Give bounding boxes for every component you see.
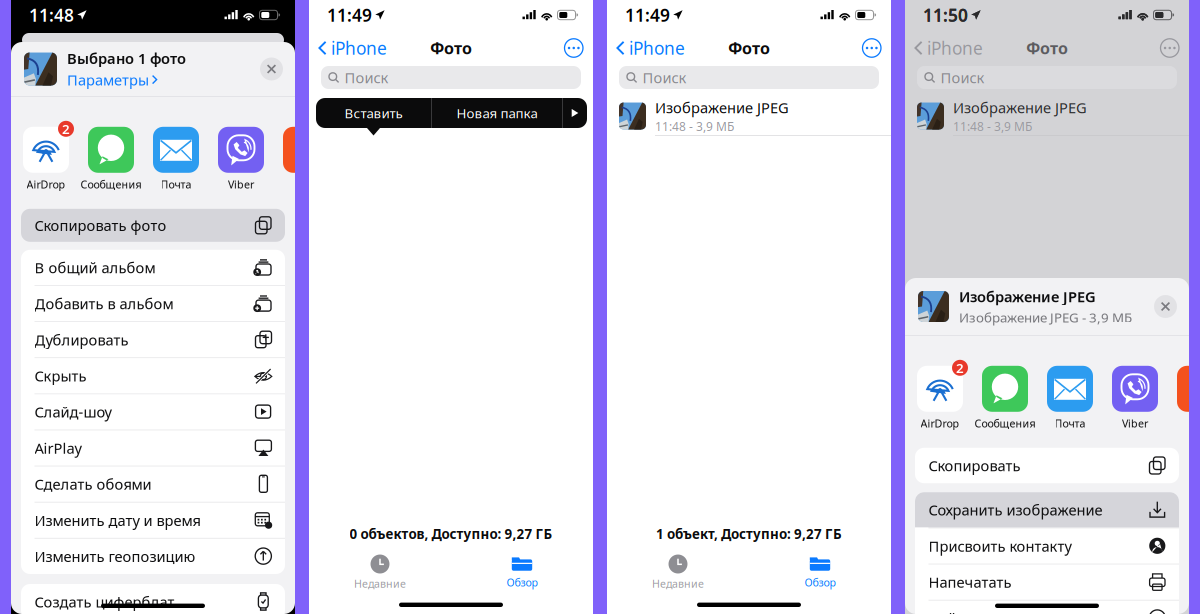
button[interactable]: iPhone (309, 30, 397, 66)
staticText: Viber (228, 177, 254, 191)
button[interactable]: 2 (917, 366, 963, 429)
staticText: Фото (430, 37, 472, 59)
button[interactable]: Почта (153, 127, 199, 190)
staticText: Почта (160, 177, 191, 191)
button[interactable]: Изображение JPEG (905, 97, 1189, 135)
button[interactable]: Изменить дату и время (21, 502, 285, 538)
button[interactable]: Добавить в альбом (21, 286, 285, 321)
button[interactable]: В общий альбом (21, 250, 285, 285)
staticText: iPhone (927, 36, 983, 59)
staticText: Параметры (67, 70, 149, 89)
button[interactable]: Ещё (554, 30, 593, 66)
staticText: iPhone (331, 36, 387, 59)
staticText: Поиск (940, 68, 984, 87)
button[interactable]: Скопировать фото (21, 209, 285, 242)
staticText: Недавние (354, 576, 406, 591)
button[interactable]: Почта (1047, 366, 1093, 429)
button[interactable]: Сообщения (88, 127, 134, 190)
button[interactable]: Сообщения (982, 366, 1028, 429)
staticText: Дублировать (34, 330, 128, 349)
button[interactable]: Viber (218, 127, 264, 190)
staticText: 11:48 (29, 3, 74, 26)
staticText: 11:50 (923, 3, 968, 26)
staticText: 11:49 (625, 3, 670, 26)
button[interactable]: Обзор (749, 557, 891, 589)
staticText: A (298, 135, 314, 165)
button[interactable]: Закрыть (260, 57, 283, 80)
button[interactable]: Viber (1112, 366, 1158, 429)
staticText: 2 (956, 359, 964, 377)
button[interactable]: Найти через Умную камеру (915, 600, 1179, 614)
button[interactable]: Закрыть (1154, 295, 1177, 318)
button[interactable]: Обзор (451, 557, 593, 589)
button[interactable]: 2 (23, 127, 69, 190)
button[interactable]: A (1177, 366, 1200, 429)
button[interactable]: iPhone (607, 30, 695, 66)
staticText: Сохранить изображение (928, 500, 1102, 520)
staticText: Поиск (642, 68, 686, 87)
button[interactable]: Поиск (917, 66, 1177, 89)
staticText: 11:48 - 3,9 МБ (655, 118, 734, 134)
staticText: AirPlay (34, 438, 81, 458)
staticText: 1 объект, Доступно: 9,27 ГБ (656, 525, 842, 543)
staticText: Поиск (344, 68, 388, 87)
staticText: 11:48 - 3,9 МБ (953, 118, 1032, 134)
staticText: Фото (1026, 37, 1068, 59)
button[interactable]: Поиск (619, 66, 879, 89)
staticText: Слайд-шоу (34, 402, 111, 422)
staticText: Изменить геопозицию (34, 547, 195, 566)
button[interactable]: AirPlay (21, 430, 285, 466)
button[interactable]: A (283, 127, 329, 190)
button[interactable]: iPhone (905, 30, 993, 66)
staticText: В общий альбом (34, 258, 155, 277)
staticText: Скопировать фото (34, 216, 166, 235)
button[interactable]: Недавние (607, 557, 749, 589)
button[interactable]: Ещё (852, 30, 891, 66)
button[interactable]: Новая папка (432, 98, 562, 128)
staticText: Изображение JPEG (655, 98, 789, 117)
staticText: Напечатать (928, 572, 1011, 592)
button[interactable]: Сделать обоями (21, 466, 285, 502)
staticText: Новая папка (456, 104, 537, 122)
button[interactable]: Недавние (309, 557, 451, 589)
staticText: Почта (1054, 416, 1085, 430)
staticText: AirDrop (920, 416, 959, 430)
staticText: Создать циферблат (34, 592, 174, 611)
staticText: Скопировать (928, 456, 1020, 475)
button[interactable]: Вставить (316, 98, 431, 128)
button[interactable]: Сохранить изображение (915, 492, 1179, 528)
staticText: 11:50 (923, 3, 968, 26)
staticText: Сделать обоями (34, 474, 151, 494)
staticText: Фото (728, 37, 770, 59)
staticText: Изменить дату и время (34, 510, 200, 530)
staticText: Присвоить контакту (928, 536, 1071, 556)
button[interactable]: Создать циферблат (21, 584, 285, 614)
button[interactable]: Поиск (321, 66, 581, 89)
button[interactable]: Напечатать (915, 564, 1179, 600)
button[interactable]: Скрыть (21, 358, 285, 393)
button[interactable]: Ещё (563, 98, 587, 128)
button[interactable]: Слайд-шоу (21, 394, 285, 430)
staticText: Выбрано 1 фото (67, 48, 186, 68)
staticText: Добавить в альбом (34, 294, 173, 313)
staticText: Обзор (804, 575, 835, 589)
staticText: iPhone (629, 36, 685, 59)
staticText: Вставить (344, 104, 402, 122)
button[interactable]: Изменить геопозицию (21, 539, 285, 574)
button[interactable]: Дублировать (21, 322, 285, 357)
staticText: 2 (62, 120, 70, 138)
button[interactable]: Присвоить контакту (915, 528, 1179, 564)
staticText: Viber (1122, 416, 1148, 430)
staticText: Сообщения (80, 177, 141, 191)
staticText: AirDrop (26, 177, 65, 191)
button[interactable]: Ещё (1150, 30, 1189, 66)
staticText: Обзор (506, 575, 537, 589)
staticText: Найти через Умную камеру (928, 608, 1122, 614)
button[interactable]: Скопировать (915, 448, 1179, 483)
staticText: 11:49 (327, 3, 372, 26)
button[interactable]: Изображение JPEG (607, 97, 891, 135)
staticText: Изображение JPEG (953, 98, 1087, 117)
staticText: Ali (299, 177, 312, 191)
